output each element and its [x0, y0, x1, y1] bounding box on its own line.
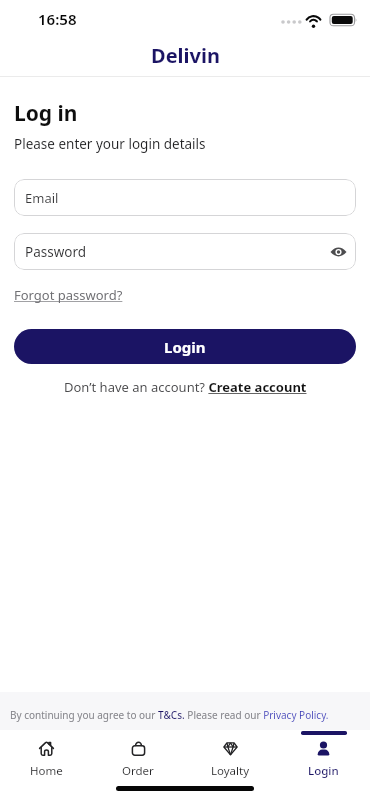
staticText: Please enter your login details [14, 135, 206, 153]
staticText: Log in [14, 99, 78, 128]
staticText: Home [30, 763, 63, 779]
button[interactable]: Login [277, 739, 370, 779]
button[interactable]: Password [14, 233, 356, 270]
button[interactable]: Login [14, 329, 356, 364]
staticText: Login [164, 337, 206, 357]
staticText: Login [308, 763, 339, 779]
button[interactable]: Email [14, 179, 356, 216]
staticText: Don’t have an account? Create account [64, 378, 307, 396]
staticText: Email [25, 189, 59, 207]
button[interactable]: Don’t have an account? Create account [14, 378, 356, 396]
staticText: By continuing you agree to our T&Cs. Ple… [10, 708, 329, 722]
staticText: Password [25, 243, 87, 261]
button[interactable]: Loyalty [184, 739, 277, 779]
button[interactable]: Home [0, 739, 92, 779]
staticText: Loyalty [211, 763, 250, 779]
button[interactable]: Order [92, 739, 184, 779]
staticText: 16:58 [38, 9, 77, 29]
staticText: Order [122, 763, 154, 779]
staticText: Delivin [151, 42, 220, 69]
button[interactable]: Forgot password? [14, 286, 123, 304]
